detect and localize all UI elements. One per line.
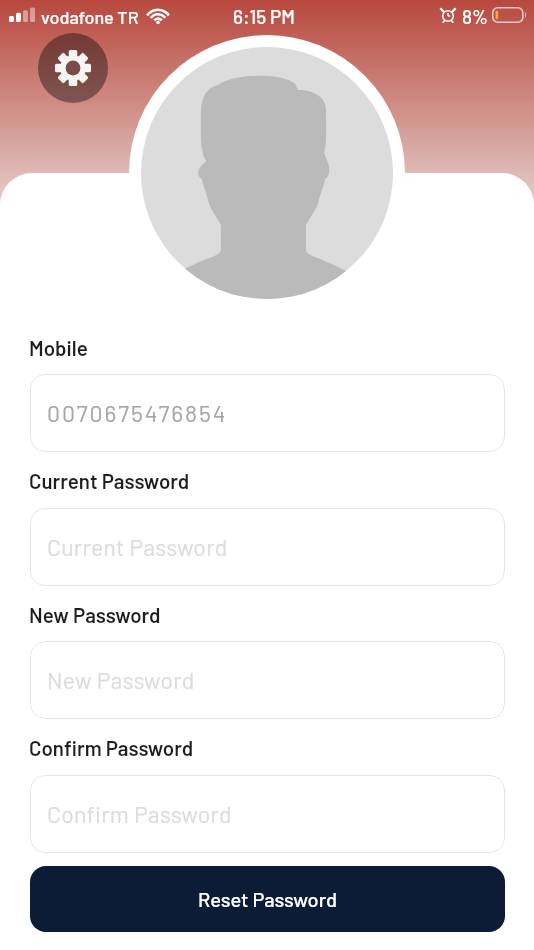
staticText: 6:15 PM (233, 5, 295, 28)
button[interactable]: Reset Password (30, 866, 505, 932)
staticText: Reset Password (198, 887, 337, 911)
button[interactable]: New Password (30, 641, 505, 719)
staticText: Confirm Password (29, 735, 194, 760)
button[interactable]: Confirm Password (30, 775, 505, 853)
staticText: vodafone TR (41, 6, 139, 28)
staticText: Confirm Password (47, 800, 232, 828)
button[interactable]: Current Password (30, 508, 505, 586)
staticText: New Password (47, 666, 195, 694)
button[interactable]: Settings (38, 33, 108, 103)
button[interactable]: 0070675476854 (30, 374, 505, 452)
staticText: 0070675476854 (47, 399, 228, 427)
staticText: Current Password (47, 533, 228, 561)
staticText: 8% (462, 5, 488, 28)
staticText: Current Password (29, 468, 190, 493)
staticText: Mobile (29, 335, 88, 360)
staticText: New Password (29, 602, 161, 627)
